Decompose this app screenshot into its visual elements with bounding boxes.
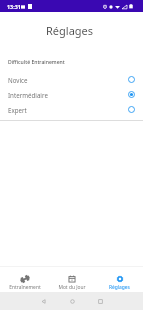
staticText: Expert: [8, 106, 27, 114]
staticText: Intermédiaire: [8, 91, 48, 99]
staticText: 13:31: [7, 3, 21, 10]
staticText: Entraînement: [9, 284, 41, 291]
staticText: Réglages: [46, 23, 94, 38]
button[interactable]: Back: [36, 294, 50, 308]
button[interactable]: Entraînement: [1, 266, 48, 292]
button[interactable]: Expert: [0, 102, 143, 117]
button[interactable]: Recents: [93, 294, 107, 308]
button[interactable]: Home: [65, 294, 79, 308]
staticText: Mot du Jour: [58, 284, 86, 291]
button[interactable]: Intermédiaire: [0, 87, 143, 102]
button[interactable]: Mot du Jour: [48, 266, 95, 292]
staticText: Réglages: [109, 284, 130, 291]
button[interactable]: Réglages: [96, 266, 143, 292]
staticText: Difficulté Entrainement: [8, 59, 65, 66]
staticText: Novice: [8, 76, 28, 84]
button[interactable]: Novice: [0, 72, 143, 87]
